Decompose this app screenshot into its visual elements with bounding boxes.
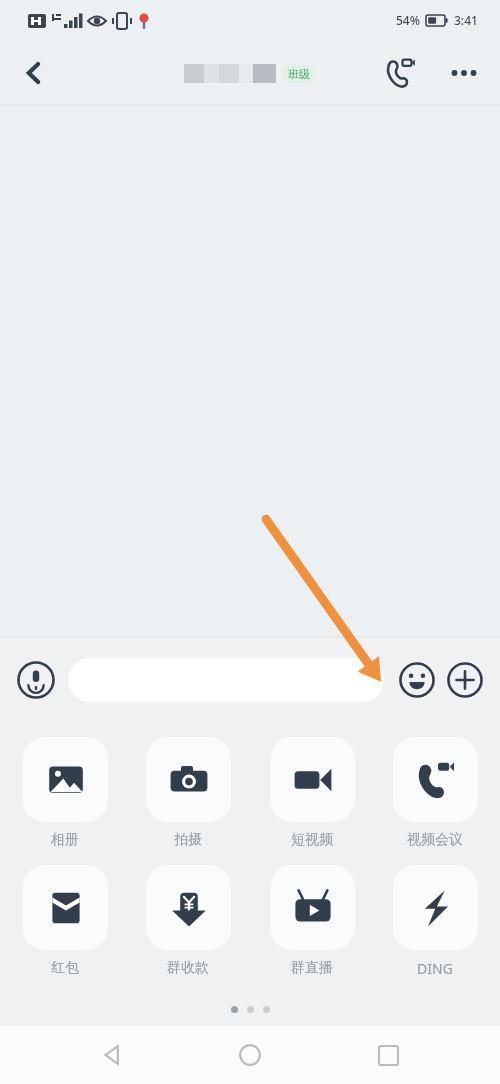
staticText: 短视频 [291,831,333,849]
staticText: 拍摄 [174,831,202,849]
button[interactable]: More [444,659,486,701]
staticText: 54% [396,12,420,28]
button[interactable]: 拍摄 [145,737,231,849]
button[interactable]: Emoji [396,659,438,701]
staticText: 群直播 [291,959,333,977]
staticText: 红包 [51,959,79,977]
button[interactable]: Recent apps [363,1030,413,1080]
button[interactable]: Home [225,1030,275,1080]
button[interactable]: 相册 [22,737,108,849]
staticText: 相册 [51,831,79,849]
button[interactable]: 红包 [22,865,108,977]
button[interactable]: Voice message [14,658,58,702]
button[interactable]: 视频会议 [392,737,478,849]
button[interactable]: Back [88,1030,138,1080]
staticText: 群收款 [167,959,209,977]
staticText: 班级 [288,67,310,81]
button[interactable]: 群直播 [269,865,355,977]
staticText: 视频会议 [407,831,463,849]
button[interactable] [68,658,384,702]
button[interactable]: 群收款 [145,865,231,977]
staticText: 3:41 [454,12,478,28]
staticText: DING [417,959,453,978]
button[interactable]: More options [442,51,486,95]
button[interactable]: 短视频 [269,737,355,849]
button[interactable]: Back [8,47,60,99]
button[interactable]: DING [392,865,478,978]
button[interactable]: Video call [378,50,424,96]
